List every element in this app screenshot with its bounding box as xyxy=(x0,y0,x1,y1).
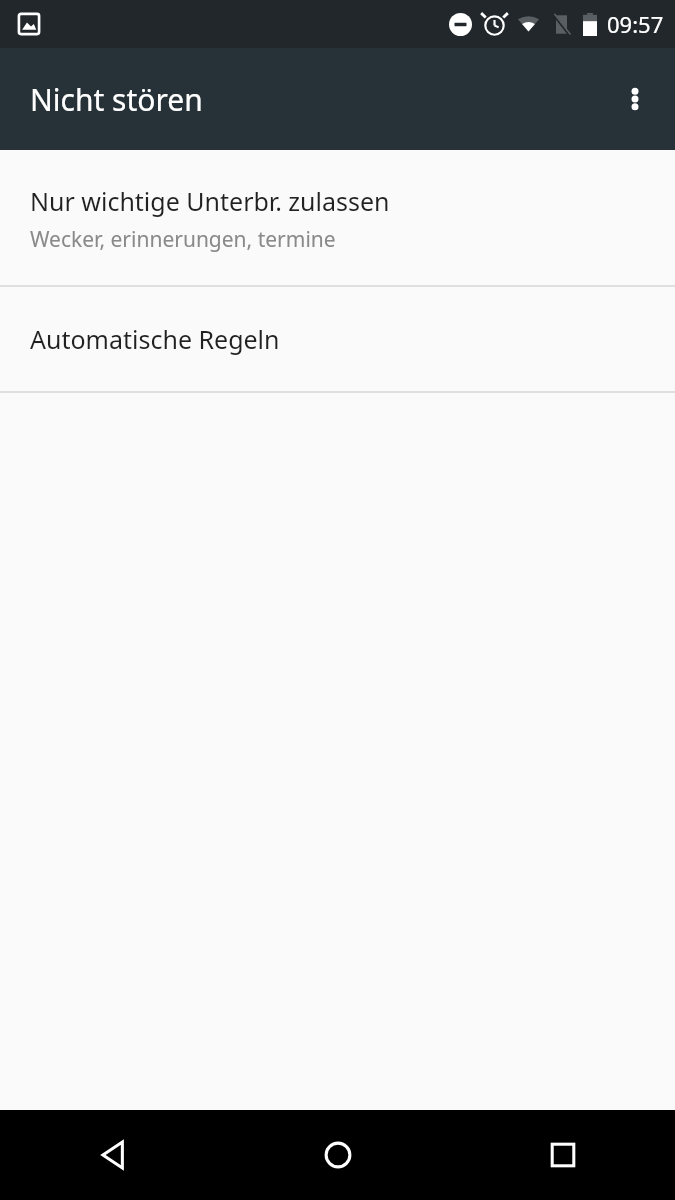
button[interactable]: Nur wichtige Unterbr. zulassen xyxy=(0,152,675,285)
button[interactable]: Back xyxy=(0,1110,225,1200)
staticText: Nicht stören xyxy=(30,79,203,120)
button[interactable]: Recents xyxy=(450,1110,675,1200)
button[interactable]: More options xyxy=(611,75,659,123)
button[interactable]: Home xyxy=(225,1110,450,1200)
staticText: Wecker, erinnerungen, termine xyxy=(30,225,336,254)
staticText: Automatische Regeln xyxy=(30,322,280,356)
staticText: Nur wichtige Unterbr. zulassen xyxy=(30,184,390,218)
button[interactable]: Automatische Regeln xyxy=(0,287,675,391)
staticText: 09:57 xyxy=(607,9,664,39)
